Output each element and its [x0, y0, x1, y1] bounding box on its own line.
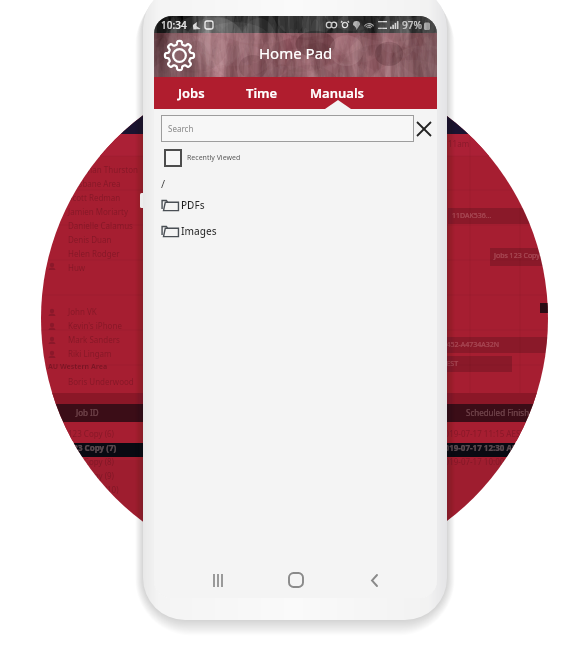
- staticText: 2019-07-17 11:15 AEST: [440, 428, 525, 439]
- staticText: Denis Duan: [68, 234, 112, 245]
- staticText: 11am: [448, 138, 470, 149]
- staticText: Search: [168, 123, 194, 134]
- staticText: AU Western Area: [48, 362, 108, 372]
- button[interactable]: Back: [351, 564, 397, 596]
- staticText: Kevin's iPhone: [68, 320, 122, 331]
- staticText: Jobs: [178, 84, 205, 102]
- staticText: Recently Viewed: [187, 153, 241, 163]
- staticText: John VK: [68, 306, 97, 317]
- staticText: Boris Underwood: [68, 376, 134, 387]
- staticText: Riki Lingam: [68, 348, 112, 359]
- staticText: Brisbane Area: [68, 178, 121, 189]
- staticText: A452-A4734A32N: [442, 340, 500, 350]
- staticText: Home Pad: [259, 43, 333, 63]
- staticText: Images: [181, 224, 217, 238]
- staticText: Duration: [68, 142, 106, 154]
- staticText: AEST: [442, 359, 459, 369]
- staticText: Job ID: [76, 407, 99, 418]
- staticText: Helen Rodger: [68, 248, 120, 259]
- staticText: PDFs: [181, 198, 205, 212]
- staticText: Huw: [68, 262, 86, 273]
- staticText: Job 123 Copy (6): [54, 428, 115, 439]
- staticText: 2019-07-17 10:00: [440, 456, 505, 467]
- staticText: /: [161, 176, 166, 191]
- staticText: Job 123 Copy (8): [54, 456, 115, 467]
- button[interactable]: PDFs: [161, 198, 437, 212]
- button[interactable]: Images: [161, 224, 437, 238]
- staticText: Job 123 Copy (9): [54, 470, 115, 481]
- staticText: Time: [246, 84, 278, 102]
- staticText: 2019-07-17 12:30 AEST: [440, 442, 526, 453]
- staticText: Jamien Moriarty: [68, 206, 128, 217]
- button[interactable]: Clear search: [417, 120, 431, 138]
- staticText: 23: [440, 532, 449, 542]
- staticText: Manuals: [310, 84, 364, 102]
- button[interactable]: Manuals: [304, 77, 370, 109]
- staticText: 97%: [402, 18, 422, 32]
- staticText: Job 123 Copy (10): [54, 484, 119, 495]
- staticText: 2019-0: [440, 518, 466, 529]
- staticText: 11DAK536...: [452, 211, 492, 221]
- staticText: Danielle Calamus: [68, 220, 133, 231]
- staticText: Jonathan Thurston: [68, 164, 138, 175]
- staticText: Mark Sanders: [68, 334, 120, 345]
- staticText: 10:34: [161, 18, 187, 32]
- staticText: Jobs 123 Copy (7): [494, 251, 550, 261]
- button[interactable]: Home: [273, 564, 319, 596]
- button[interactable]: Time: [240, 77, 284, 109]
- button[interactable]: Jobs: [172, 77, 211, 109]
- button[interactable]: Settings: [164, 40, 195, 71]
- staticText: Scott Redman: [68, 192, 121, 203]
- staticText: Job 123 Copy (7): [54, 442, 117, 453]
- staticText: Scheduled Finish: [466, 407, 530, 418]
- button[interactable]: Recent apps: [195, 564, 241, 596]
- button[interactable]: Recently Viewed: [164, 149, 241, 167]
